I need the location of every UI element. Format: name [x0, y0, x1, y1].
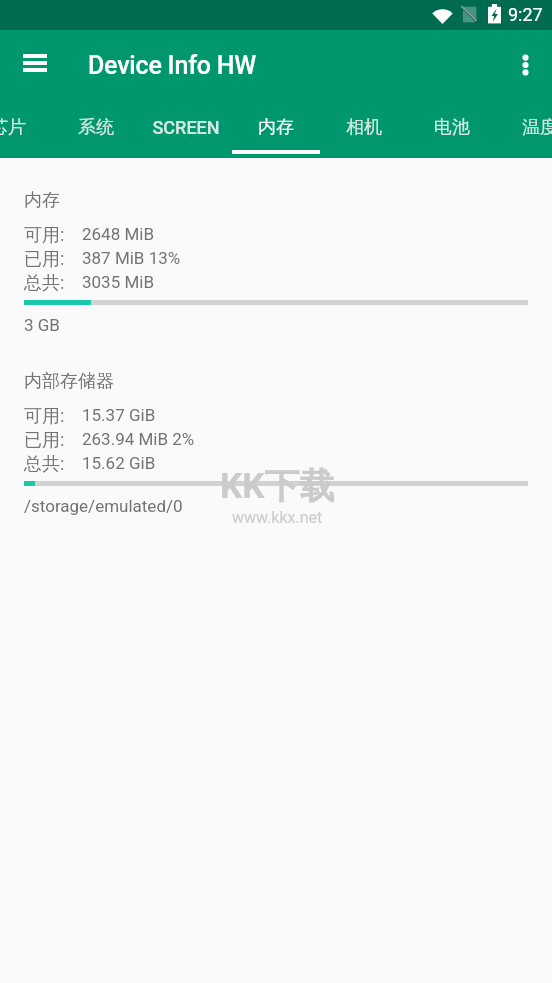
button[interactable]: 芯片 [0, 99, 52, 155]
button[interactable]: 相机 [320, 99, 408, 155]
button[interactable]: 系统 [52, 99, 140, 155]
staticText: Device Info HW [88, 51, 257, 80]
staticText: 总共: [24, 272, 65, 295]
staticText: 电池 [434, 116, 470, 139]
staticText: 温度 [522, 116, 552, 139]
staticText: 2648 MiB [82, 224, 155, 244]
staticText: 总共: [24, 453, 65, 476]
staticText: 可用: [24, 224, 65, 247]
staticText: 已用: [24, 429, 65, 452]
staticText: 15.37 GiB [82, 405, 156, 425]
staticText: 3 GB [24, 315, 60, 335]
staticText: 芯片 [0, 116, 26, 139]
staticText: www.kkx.net [232, 508, 323, 527]
staticText: 可用: [24, 405, 65, 428]
staticText: 内存 [24, 189, 60, 212]
button[interactable]: 内存 [232, 99, 320, 155]
button[interactable]: 温度 [496, 99, 552, 155]
button[interactable]: More options [499, 39, 551, 91]
staticText: 相机 [346, 116, 382, 139]
staticText: 9:27 [508, 4, 543, 25]
staticText: /storage/emulated/0 [24, 496, 183, 516]
staticText: 内存 [258, 116, 294, 139]
staticText: SCREEN [152, 117, 220, 138]
staticText: 内部存储器 [24, 370, 114, 393]
staticText: 263.94 MiB 2% [82, 429, 195, 449]
staticText: KK下载 [220, 464, 335, 508]
staticText: 15.62 GiB [82, 453, 156, 473]
staticText: 387 MiB 13% [82, 248, 181, 268]
button[interactable]: SCREEN [140, 99, 232, 155]
staticText: 3035 MiB [82, 272, 155, 292]
staticText: 已用: [24, 248, 65, 271]
button[interactable]: 电池 [408, 99, 496, 155]
button[interactable]: Open navigation menu [9, 37, 61, 89]
staticText: 系统 [78, 116, 114, 139]
